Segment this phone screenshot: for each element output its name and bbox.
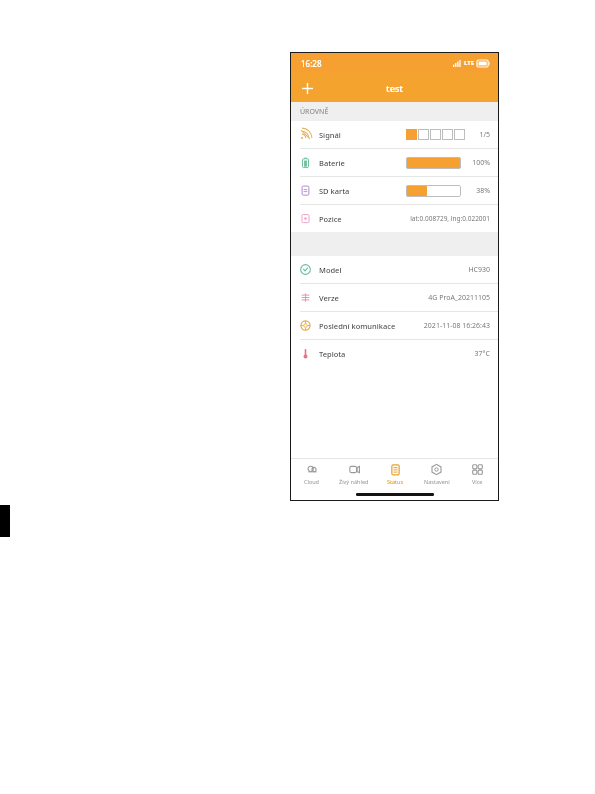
staticText: test (386, 82, 404, 94)
button[interactable]: Teplota (291, 340, 498, 367)
button[interactable]: SD karta (291, 177, 498, 205)
button[interactable]: Pozice (291, 205, 498, 232)
staticText: Model (319, 265, 342, 275)
button[interactable]: Poslední komunikace (291, 312, 498, 340)
staticText: ÚROVNĚ (300, 107, 329, 117)
staticText: 2021-11-08 16:26:43 (423, 321, 490, 331)
button[interactable]: Cloud (291, 459, 333, 489)
staticText: SD karta (319, 186, 350, 196)
button[interactable]: Model (291, 256, 498, 284)
staticText: Poslední komunikace (319, 321, 396, 331)
staticText: Verze (319, 293, 339, 303)
staticText: Pozice (319, 214, 342, 224)
button[interactable]: Verze (291, 284, 498, 312)
staticText: 37°C (474, 349, 490, 359)
staticText: Více (472, 478, 483, 485)
button[interactable]: Signál (291, 121, 498, 149)
staticText: Teplota (319, 349, 346, 359)
button[interactable]: Nastavení (416, 459, 457, 489)
staticText: HC930 (468, 265, 490, 275)
staticText: 16:28 (301, 58, 322, 69)
staticText: Živý náhled (339, 478, 369, 485)
button[interactable]: Živý náhled (333, 459, 375, 489)
button[interactable]: Baterie (291, 149, 498, 177)
staticText: 1/5 (470, 130, 490, 140)
staticText: LTE (464, 59, 475, 67)
button[interactable]: Více (457, 459, 498, 489)
staticText: Signál (319, 130, 341, 140)
button[interactable]: Add (295, 76, 319, 100)
staticText: Nastavení (424, 478, 450, 485)
button[interactable]: Status (375, 459, 416, 489)
staticText: Cloud (304, 478, 320, 485)
staticText: 100% (465, 158, 490, 168)
staticText: lat:0.008729, lng:0.022001 (410, 214, 490, 223)
staticText: 4G ProA_20211105 (428, 293, 490, 303)
staticText: 38% (465, 186, 490, 196)
staticText: Baterie (319, 158, 345, 168)
staticText: Status (387, 478, 404, 485)
